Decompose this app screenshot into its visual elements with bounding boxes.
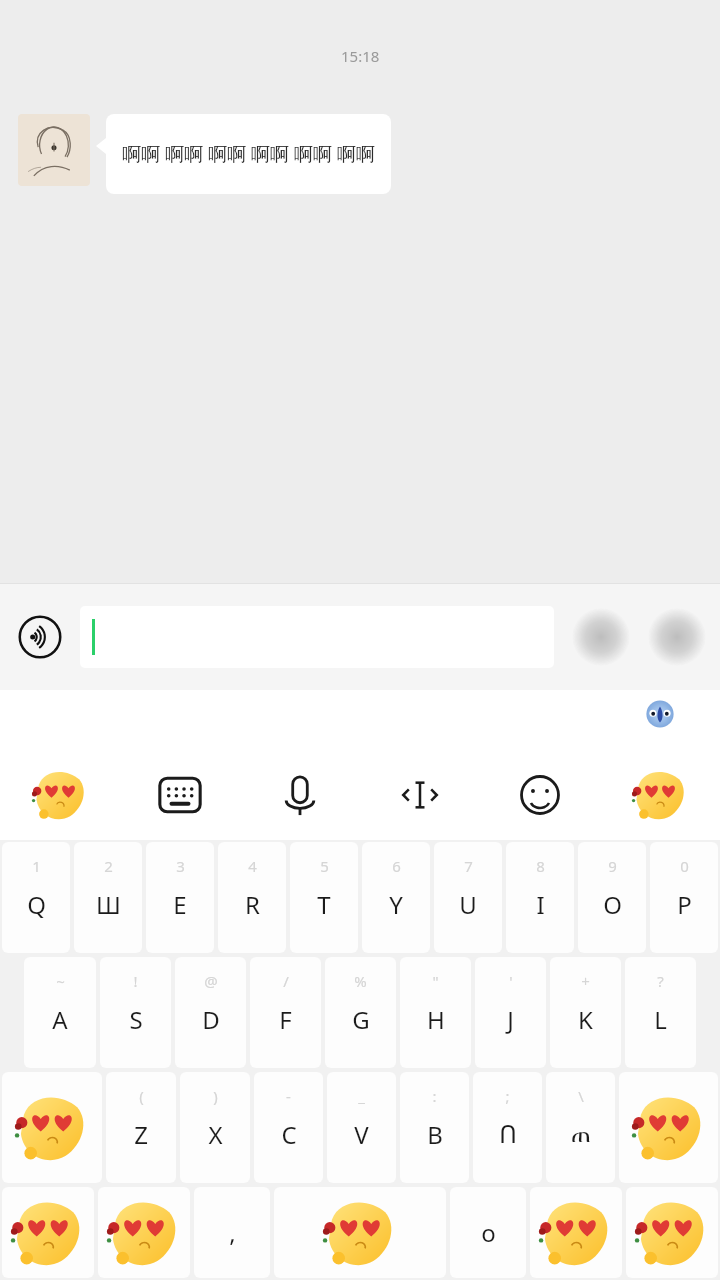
staticText: O bbox=[603, 888, 622, 921]
button[interactable]: Emoji bbox=[480, 750, 600, 840]
button[interactable]: Emoji picker bbox=[572, 608, 630, 666]
button[interactable]: / bbox=[250, 957, 321, 1068]
button[interactable]: Emoji key bbox=[619, 1072, 718, 1183]
button[interactable]: Emoji key bbox=[530, 1187, 622, 1278]
button[interactable]: " bbox=[400, 957, 471, 1068]
staticText: Z bbox=[134, 1118, 148, 1151]
staticText: J bbox=[507, 1003, 514, 1036]
staticText: 5 bbox=[320, 856, 329, 876]
staticText: 9 bbox=[608, 856, 617, 876]
button[interactable]: Emoji key bbox=[98, 1187, 190, 1278]
staticText: - bbox=[286, 1086, 291, 1106]
button[interactable]: % bbox=[325, 957, 396, 1068]
staticText: @ bbox=[204, 971, 218, 991]
button[interactable]: ; bbox=[473, 1072, 542, 1183]
staticText: U bbox=[459, 888, 477, 921]
button[interactable]: 8 bbox=[506, 842, 574, 953]
staticText: L bbox=[654, 1003, 667, 1036]
staticText: Ү bbox=[389, 888, 403, 921]
button[interactable]: 1 bbox=[2, 842, 70, 953]
staticText: ~ bbox=[56, 971, 65, 991]
staticText: 15:18 bbox=[341, 46, 380, 66]
staticText: ! bbox=[133, 971, 138, 991]
button[interactable]: \ bbox=[546, 1072, 615, 1183]
button[interactable]: Emoji key bbox=[2, 1187, 94, 1278]
staticText: ( bbox=[139, 1086, 144, 1106]
button[interactable]: ~ bbox=[24, 957, 96, 1068]
button[interactable]: Move cursor bbox=[360, 750, 480, 840]
staticText: 6 bbox=[392, 856, 401, 876]
staticText: X bbox=[208, 1118, 223, 1151]
staticText: ' bbox=[509, 971, 513, 991]
staticText: 3 bbox=[176, 856, 185, 876]
button[interactable] bbox=[80, 606, 554, 668]
staticText: C bbox=[281, 1118, 297, 1151]
button[interactable]: 9 bbox=[578, 842, 646, 953]
button[interactable]: 3 bbox=[146, 842, 214, 953]
staticText: A bbox=[52, 1003, 68, 1036]
staticText: F bbox=[279, 1003, 292, 1036]
staticText: I bbox=[536, 888, 545, 921]
staticText: Q bbox=[27, 888, 46, 921]
staticText: 8 bbox=[536, 856, 545, 876]
button[interactable]: @ bbox=[175, 957, 246, 1068]
staticText: S bbox=[129, 1003, 143, 1036]
button[interactable]: Sticker bbox=[600, 750, 720, 840]
staticText: ) bbox=[213, 1086, 218, 1106]
staticText: K bbox=[578, 1003, 593, 1036]
button[interactable]: 5 bbox=[290, 842, 358, 953]
staticText: G bbox=[352, 1003, 370, 1036]
staticText: R bbox=[245, 888, 260, 921]
staticText: ; bbox=[505, 1086, 510, 1106]
staticText: T bbox=[317, 888, 331, 921]
button[interactable]: _ bbox=[327, 1072, 396, 1183]
button[interactable]: Voice typing bbox=[240, 750, 360, 840]
button[interactable]: Sticker bbox=[0, 750, 120, 840]
button[interactable]: 6 bbox=[362, 842, 430, 953]
button[interactable]: + bbox=[550, 957, 621, 1068]
button[interactable]: ! bbox=[100, 957, 171, 1068]
staticText: % bbox=[354, 971, 367, 991]
button[interactable]: 4 bbox=[218, 842, 286, 953]
button[interactable]: ( bbox=[106, 1072, 176, 1183]
staticText: D bbox=[202, 1003, 220, 1036]
staticText: 啊啊 啊啊 啊啊 啊啊 啊啊 啊啊 bbox=[122, 141, 375, 167]
staticText: H bbox=[427, 1003, 445, 1036]
button[interactable]: More options bbox=[648, 608, 706, 666]
button[interactable]: o bbox=[450, 1187, 526, 1278]
button[interactable]: : bbox=[400, 1072, 469, 1183]
staticText: V bbox=[354, 1118, 369, 1151]
button[interactable]: ? bbox=[625, 957, 696, 1068]
button[interactable]: 0 bbox=[650, 842, 718, 953]
button[interactable]: 啊啊 啊啊 啊啊 啊啊 啊啊 啊啊 bbox=[106, 114, 391, 194]
button[interactable]: Emoji key bbox=[274, 1187, 446, 1278]
button[interactable]: Emoji key bbox=[626, 1187, 718, 1278]
button[interactable]: Voice input bbox=[14, 611, 66, 663]
staticText: _ bbox=[358, 1086, 365, 1106]
button[interactable]: 7 bbox=[434, 842, 502, 953]
staticText: B bbox=[427, 1118, 443, 1151]
staticText: , bbox=[229, 1216, 236, 1249]
button[interactable]: Emoji key bbox=[2, 1072, 102, 1183]
button[interactable]: ' bbox=[475, 957, 546, 1068]
staticText: P bbox=[677, 888, 692, 921]
button[interactable]: , bbox=[194, 1187, 270, 1278]
staticText: Ո bbox=[499, 1121, 517, 1149]
staticText: ጠ bbox=[571, 1123, 591, 1147]
staticText: / bbox=[283, 971, 289, 991]
staticText: \ bbox=[578, 1086, 584, 1106]
button[interactable]: 2 bbox=[74, 842, 142, 953]
button[interactable]: Keyboard layout bbox=[120, 750, 240, 840]
staticText: 7 bbox=[464, 856, 473, 876]
staticText: 4 bbox=[248, 856, 257, 876]
button[interactable]: ) bbox=[180, 1072, 250, 1183]
staticText: 0 bbox=[680, 856, 689, 876]
staticText: " bbox=[432, 971, 439, 991]
button[interactable]: Contact avatar bbox=[18, 114, 90, 186]
button[interactable]: - bbox=[254, 1072, 323, 1183]
staticText: E bbox=[173, 888, 187, 921]
staticText: 1 bbox=[32, 856, 41, 876]
staticText: Ш bbox=[96, 888, 121, 921]
staticText: 2 bbox=[104, 856, 113, 876]
staticText: : bbox=[432, 1086, 437, 1106]
